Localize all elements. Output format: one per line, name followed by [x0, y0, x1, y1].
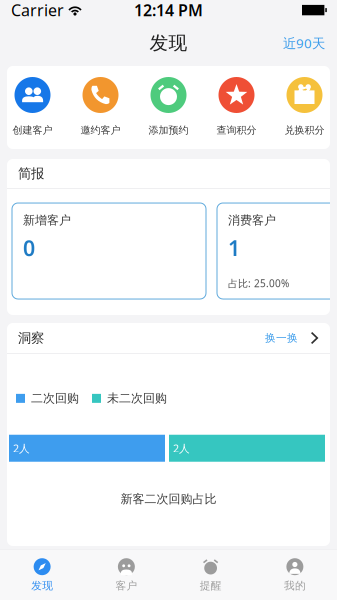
staticText: 洞察	[18, 330, 44, 346]
button[interactable]: 我的	[253, 548, 337, 600]
staticText: 兑换积分	[284, 124, 324, 136]
button[interactable]: 查询积分	[210, 77, 262, 136]
staticText: 创建客户	[12, 124, 52, 136]
staticText: 2人	[13, 441, 30, 455]
staticText: 发现	[31, 579, 53, 592]
staticText: 新客二次回购占比	[120, 492, 216, 506]
staticText: 0	[23, 234, 35, 262]
staticText: 客户	[115, 579, 137, 592]
button[interactable]: 发现	[0, 548, 84, 600]
staticText: 消费客户	[228, 213, 276, 228]
staticText: Carrier	[11, 0, 64, 21]
button[interactable]: 换一换	[265, 325, 319, 351]
staticText: 提醒	[200, 579, 222, 592]
button[interactable]: 客户	[84, 548, 168, 600]
staticText: 简报	[18, 165, 44, 182]
button[interactable]: 邀约客户	[74, 77, 126, 136]
staticText: 添加预约	[148, 124, 188, 136]
button[interactable]: 添加预约	[142, 77, 194, 136]
staticText: 占比: 25.00%	[228, 277, 289, 290]
button[interactable]: 创建客户	[6, 77, 58, 136]
button[interactable]: 近90天	[274, 25, 334, 61]
button[interactable]: 兑换积分	[278, 77, 330, 136]
staticText: 2人	[173, 441, 190, 455]
button[interactable]: 提醒	[168, 548, 253, 600]
staticText: 二次回购	[31, 391, 79, 406]
staticText: 我的	[284, 579, 306, 592]
staticText: 近90天	[283, 34, 325, 52]
staticText: 换一换	[265, 331, 298, 344]
staticText: 12:14 PM	[134, 0, 203, 21]
staticText: 未二次回购	[107, 391, 167, 406]
staticText: 查询积分	[216, 124, 256, 136]
staticText: 新增客户	[23, 213, 71, 228]
staticText: 发现	[149, 31, 187, 54]
staticText: 1	[228, 234, 240, 262]
staticText: 邀约客户	[80, 124, 120, 136]
